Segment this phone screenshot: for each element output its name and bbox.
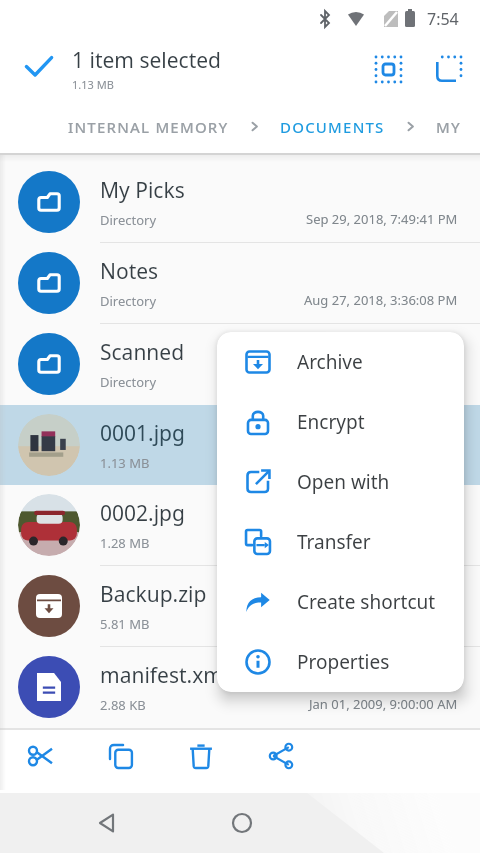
button[interactable]: MY PICKS (436, 117, 480, 137)
staticText: Encrypt (297, 409, 365, 435)
button[interactable]: My Picks (0, 162, 480, 242)
button[interactable] (97, 732, 145, 780)
button[interactable] (177, 732, 225, 780)
button[interactable]: Create shortcut (217, 572, 464, 632)
staticText: Backup.zip (100, 580, 207, 609)
staticText: 0001.jpg (100, 419, 185, 448)
button[interactable]: 0002.jpg (0, 485, 480, 565)
staticText: Open with (297, 469, 390, 495)
button[interactable]: Archive (217, 332, 464, 392)
button[interactable]: Scanned (0, 324, 480, 404)
staticText: 1.13 MB (72, 77, 114, 92)
button[interactable]: Properties (217, 632, 464, 692)
button[interactable] (12, 39, 66, 93)
button[interactable] (424, 45, 472, 93)
staticText: 1.28 MB (100, 534, 150, 552)
staticText: 1 item selected (72, 46, 221, 75)
staticText: Create shortcut (297, 589, 436, 615)
staticText: 5.81 MB (100, 615, 150, 633)
staticText: Directory (100, 373, 157, 391)
button[interactable] (364, 45, 412, 93)
staticText: Transfer (297, 529, 371, 555)
staticText: My Picks (100, 176, 185, 205)
staticText: Properties (297, 649, 390, 675)
staticText: Directory (100, 211, 157, 229)
button[interactable] (83, 799, 131, 847)
button[interactable]: manifest.xml (0, 647, 480, 727)
staticText: Aug 27, 2018, 3:36:08 PM (304, 291, 458, 309)
button[interactable]: Open with (217, 452, 464, 512)
button[interactable]: Notes (0, 243, 480, 323)
staticText: Directory (100, 292, 157, 310)
staticText: Archive (297, 349, 363, 375)
button[interactable]: Transfer (217, 512, 464, 572)
button[interactable]: 0001.jpg (0, 405, 480, 485)
staticText: Jan 01, 2009, 9:00:00 AM (309, 695, 458, 713)
button[interactable] (257, 732, 305, 780)
button[interactable]: Backup.zip (0, 566, 480, 646)
staticText: 1.13 MB (100, 454, 150, 472)
button[interactable]: DOCUMENTS (280, 117, 385, 137)
staticText: 0002.jpg (100, 499, 185, 528)
staticText: manifest.xml (100, 661, 229, 690)
button[interactable] (218, 799, 266, 847)
button[interactable] (17, 732, 65, 780)
staticText: Notes (100, 257, 159, 286)
button[interactable]: Encrypt (217, 392, 464, 452)
staticText: 2.88 KB (100, 696, 146, 714)
staticText: Sep 29, 2018, 7:49:41 PM (306, 210, 458, 228)
staticText: Scanned (100, 338, 185, 367)
button[interactable]: INTERNAL MEMORY (68, 117, 229, 137)
staticText: 7:54 (427, 8, 459, 30)
